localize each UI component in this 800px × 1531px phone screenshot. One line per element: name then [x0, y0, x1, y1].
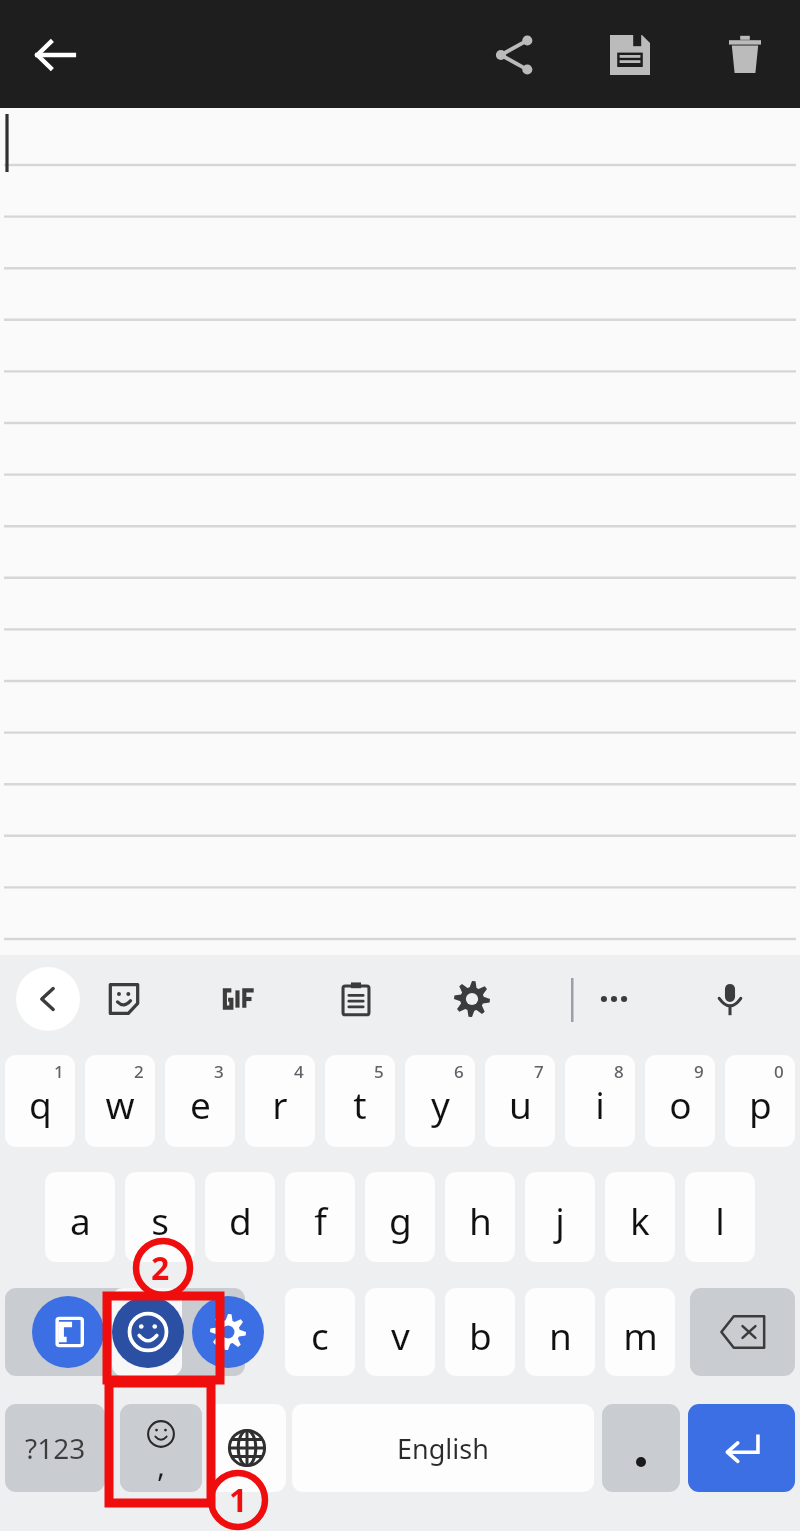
- staticText: 2: [134, 1060, 144, 1083]
- button[interactable]: English: [292, 1404, 594, 1492]
- button[interactable]: u: [485, 1055, 555, 1147]
- staticText: k: [630, 1195, 650, 1245]
- button[interactable]: g: [365, 1172, 435, 1262]
- staticText: c: [311, 1310, 329, 1360]
- button[interactable]: q: [5, 1055, 75, 1147]
- staticText: v: [391, 1310, 410, 1360]
- button[interactable]: Collapse toolbar: [16, 967, 80, 1031]
- staticText: b: [469, 1310, 492, 1360]
- button[interactable]: a: [45, 1172, 115, 1262]
- button[interactable]: ?123: [5, 1404, 105, 1492]
- staticText: 6: [454, 1060, 464, 1083]
- button[interactable]: Period: [602, 1404, 680, 1492]
- staticText: q: [29, 1079, 52, 1129]
- staticText: m: [623, 1310, 658, 1360]
- staticText: 9: [694, 1060, 704, 1083]
- staticText: 4: [294, 1060, 304, 1083]
- staticText: o: [669, 1079, 692, 1129]
- staticText: a: [70, 1195, 91, 1245]
- button[interactable]: h: [445, 1172, 515, 1262]
- staticText: j: [555, 1195, 565, 1245]
- staticText: n: [549, 1310, 572, 1360]
- button[interactable]: i: [565, 1055, 635, 1147]
- button[interactable]: Save: [595, 20, 665, 90]
- button[interactable]: Delete: [710, 20, 780, 90]
- button[interactable]: l: [685, 1172, 755, 1262]
- button[interactable]: f: [285, 1172, 355, 1262]
- staticText: p: [749, 1079, 772, 1129]
- staticText: f: [314, 1195, 327, 1245]
- button[interactable]: Enter: [688, 1404, 795, 1492]
- staticText: ,: [157, 1445, 166, 1486]
- staticText: 2: [151, 1246, 170, 1290]
- button[interactable]: j: [525, 1172, 595, 1262]
- staticText: r: [272, 1079, 288, 1129]
- button[interactable]: n: [525, 1288, 595, 1376]
- staticText: ?123: [25, 1429, 86, 1467]
- button[interactable]: c: [285, 1288, 355, 1376]
- button[interactable]: v: [365, 1288, 435, 1376]
- staticText: 3: [214, 1060, 224, 1083]
- staticText: 8: [614, 1060, 624, 1083]
- button[interactable]: o: [645, 1055, 715, 1147]
- staticText: i: [595, 1079, 605, 1129]
- button[interactable]: Settings: [192, 1296, 264, 1368]
- button[interactable]: Stickers: [94, 969, 154, 1029]
- staticText: h: [469, 1195, 492, 1245]
- staticText: d: [229, 1195, 252, 1245]
- staticText: 1: [229, 1478, 248, 1522]
- staticText: English: [397, 1430, 489, 1467]
- staticText: g: [389, 1195, 412, 1245]
- button[interactable]: Back: [20, 20, 90, 90]
- staticText: u: [509, 1079, 532, 1129]
- button[interactable]: r: [245, 1055, 315, 1147]
- button[interactable]: Clipboard: [326, 969, 386, 1029]
- staticText: 1: [54, 1060, 64, 1083]
- button[interactable]: w: [85, 1055, 155, 1147]
- button[interactable]: y: [405, 1055, 475, 1147]
- button[interactable]: One-handed mode: [32, 1296, 104, 1368]
- button[interactable]: d: [205, 1172, 275, 1262]
- button[interactable]: GIF: [210, 969, 270, 1029]
- button[interactable]: More options: [584, 969, 644, 1029]
- button[interactable]: Emoji: [112, 1296, 184, 1368]
- staticText: 7: [534, 1060, 544, 1083]
- staticText: e: [190, 1079, 211, 1129]
- staticText: s: [151, 1195, 169, 1245]
- button[interactable]: b: [445, 1288, 515, 1376]
- staticText: 0: [774, 1060, 784, 1083]
- staticText: t: [353, 1079, 367, 1129]
- button[interactable]: k: [605, 1172, 675, 1262]
- button[interactable]: Share: [480, 20, 550, 90]
- button[interactable]: Settings: [442, 969, 502, 1029]
- button[interactable]: Backspace: [690, 1288, 795, 1376]
- button[interactable]: t: [325, 1055, 395, 1147]
- button[interactable]: Emoji and comma: [120, 1404, 202, 1492]
- button[interactable]: Voice input: [700, 969, 760, 1029]
- button[interactable]: p: [725, 1055, 795, 1147]
- button[interactable]: Change language: [208, 1404, 286, 1492]
- staticText: l: [715, 1195, 725, 1245]
- staticText: w: [105, 1079, 135, 1129]
- button[interactable]: s: [125, 1172, 195, 1262]
- staticText: y: [431, 1079, 450, 1129]
- button[interactable]: e: [165, 1055, 235, 1147]
- staticText: 5: [374, 1060, 384, 1083]
- button[interactable]: m: [605, 1288, 675, 1376]
